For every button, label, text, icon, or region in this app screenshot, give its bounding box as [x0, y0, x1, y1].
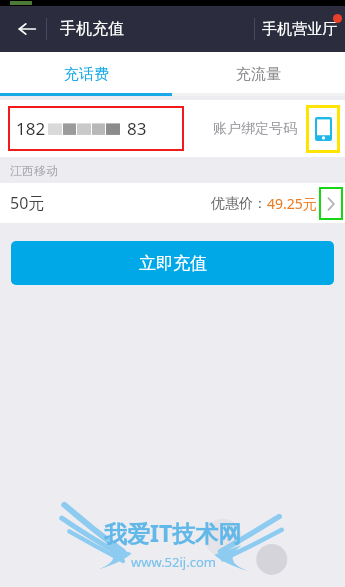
button[interactable]: 立即充值	[11, 241, 334, 285]
staticText: 手机营业厅	[262, 20, 337, 39]
staticText: 立即充值	[139, 253, 207, 274]
button[interactable]: Back	[6, 8, 48, 50]
button[interactable]: Pick contact	[306, 105, 340, 153]
button[interactable]: 手机营业厅	[254, 10, 345, 49]
button[interactable]: 充流量	[172, 52, 345, 96]
staticText: 充流量	[236, 65, 281, 84]
button[interactable]: 50元	[0, 183, 345, 223]
staticText: 50元	[10, 192, 45, 214]
staticText: 优惠价：	[211, 195, 267, 213]
staticText: 83	[127, 117, 147, 140]
staticText: 182	[16, 117, 46, 140]
staticText: 账户绑定号码	[213, 120, 297, 138]
staticText: 49.25元	[267, 194, 317, 213]
staticText: 充话费	[64, 65, 109, 84]
staticText: 江西移动	[10, 163, 58, 178]
button[interactable]: 充话费	[0, 52, 172, 96]
staticText: www.52ij.com	[131, 553, 216, 571]
staticText: 手机充值	[60, 19, 124, 39]
button[interactable]: 182	[8, 106, 184, 151]
other: More	[319, 187, 343, 220]
staticText: 我爱IT技术网	[104, 517, 242, 548]
